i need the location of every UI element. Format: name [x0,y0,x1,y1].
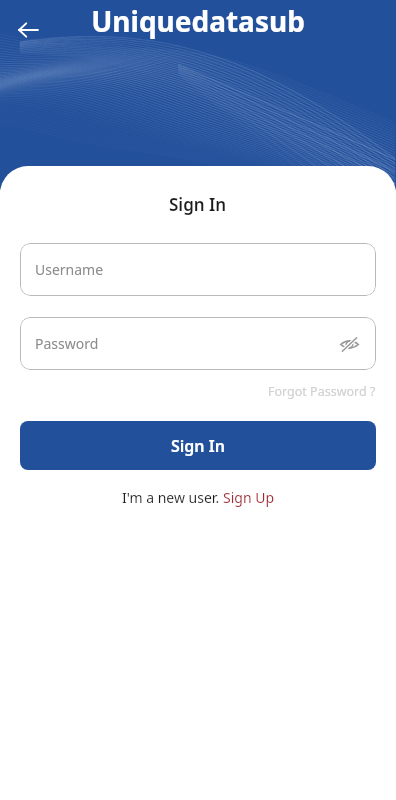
staticText: Uniquedatasub [91,2,305,40]
staticText: Sign In [169,193,227,216]
staticText: Password [35,334,99,353]
button[interactable]: Show password [331,326,367,362]
button[interactable]: Back [6,8,50,52]
staticText: I'm a new user. [122,488,223,507]
button[interactable]: Sign In [20,421,376,470]
button[interactable]: Sign Up [223,488,275,507]
staticText: Forgot Password ? [268,383,376,400]
button[interactable]: Username [20,243,376,296]
staticText: Sign In [171,435,225,457]
button[interactable]: Forgot Password ? [264,379,380,404]
button[interactable]: Password [20,317,376,370]
staticText: Username [35,260,104,279]
staticText: Sign Up [223,488,275,507]
